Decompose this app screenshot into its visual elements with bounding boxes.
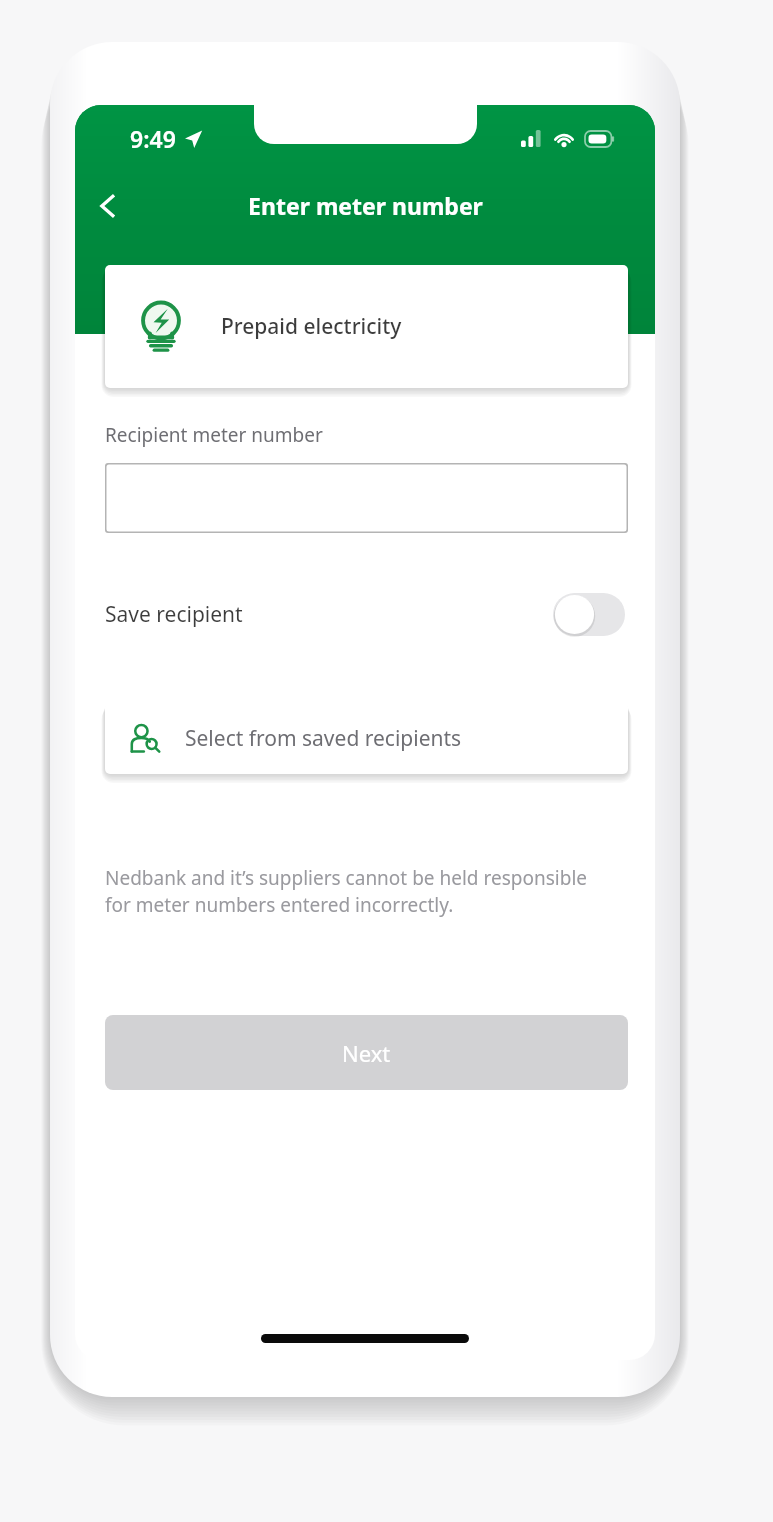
- staticText: Save recipient: [105, 600, 243, 629]
- button[interactable]: Select from saved recipients: [105, 702, 628, 774]
- staticText: Prepaid electricity: [221, 312, 402, 341]
- button[interactable]: Save recipient: [75, 579, 655, 649]
- staticText: Nedbank and it’s suppliers cannot be hel…: [105, 865, 635, 918]
- staticText: Recipient meter number: [105, 422, 323, 448]
- button[interactable]: Next: [105, 1015, 628, 1090]
- staticText: 9:49: [130, 123, 176, 154]
- button[interactable]: Prepaid electricity: [105, 265, 628, 388]
- staticText: Enter meter number: [248, 190, 483, 221]
- staticText: Next: [342, 1038, 391, 1068]
- button[interactable]: [105, 463, 628, 533]
- button[interactable]: Back: [83, 181, 133, 231]
- staticText: Select from saved recipients: [185, 724, 462, 753]
